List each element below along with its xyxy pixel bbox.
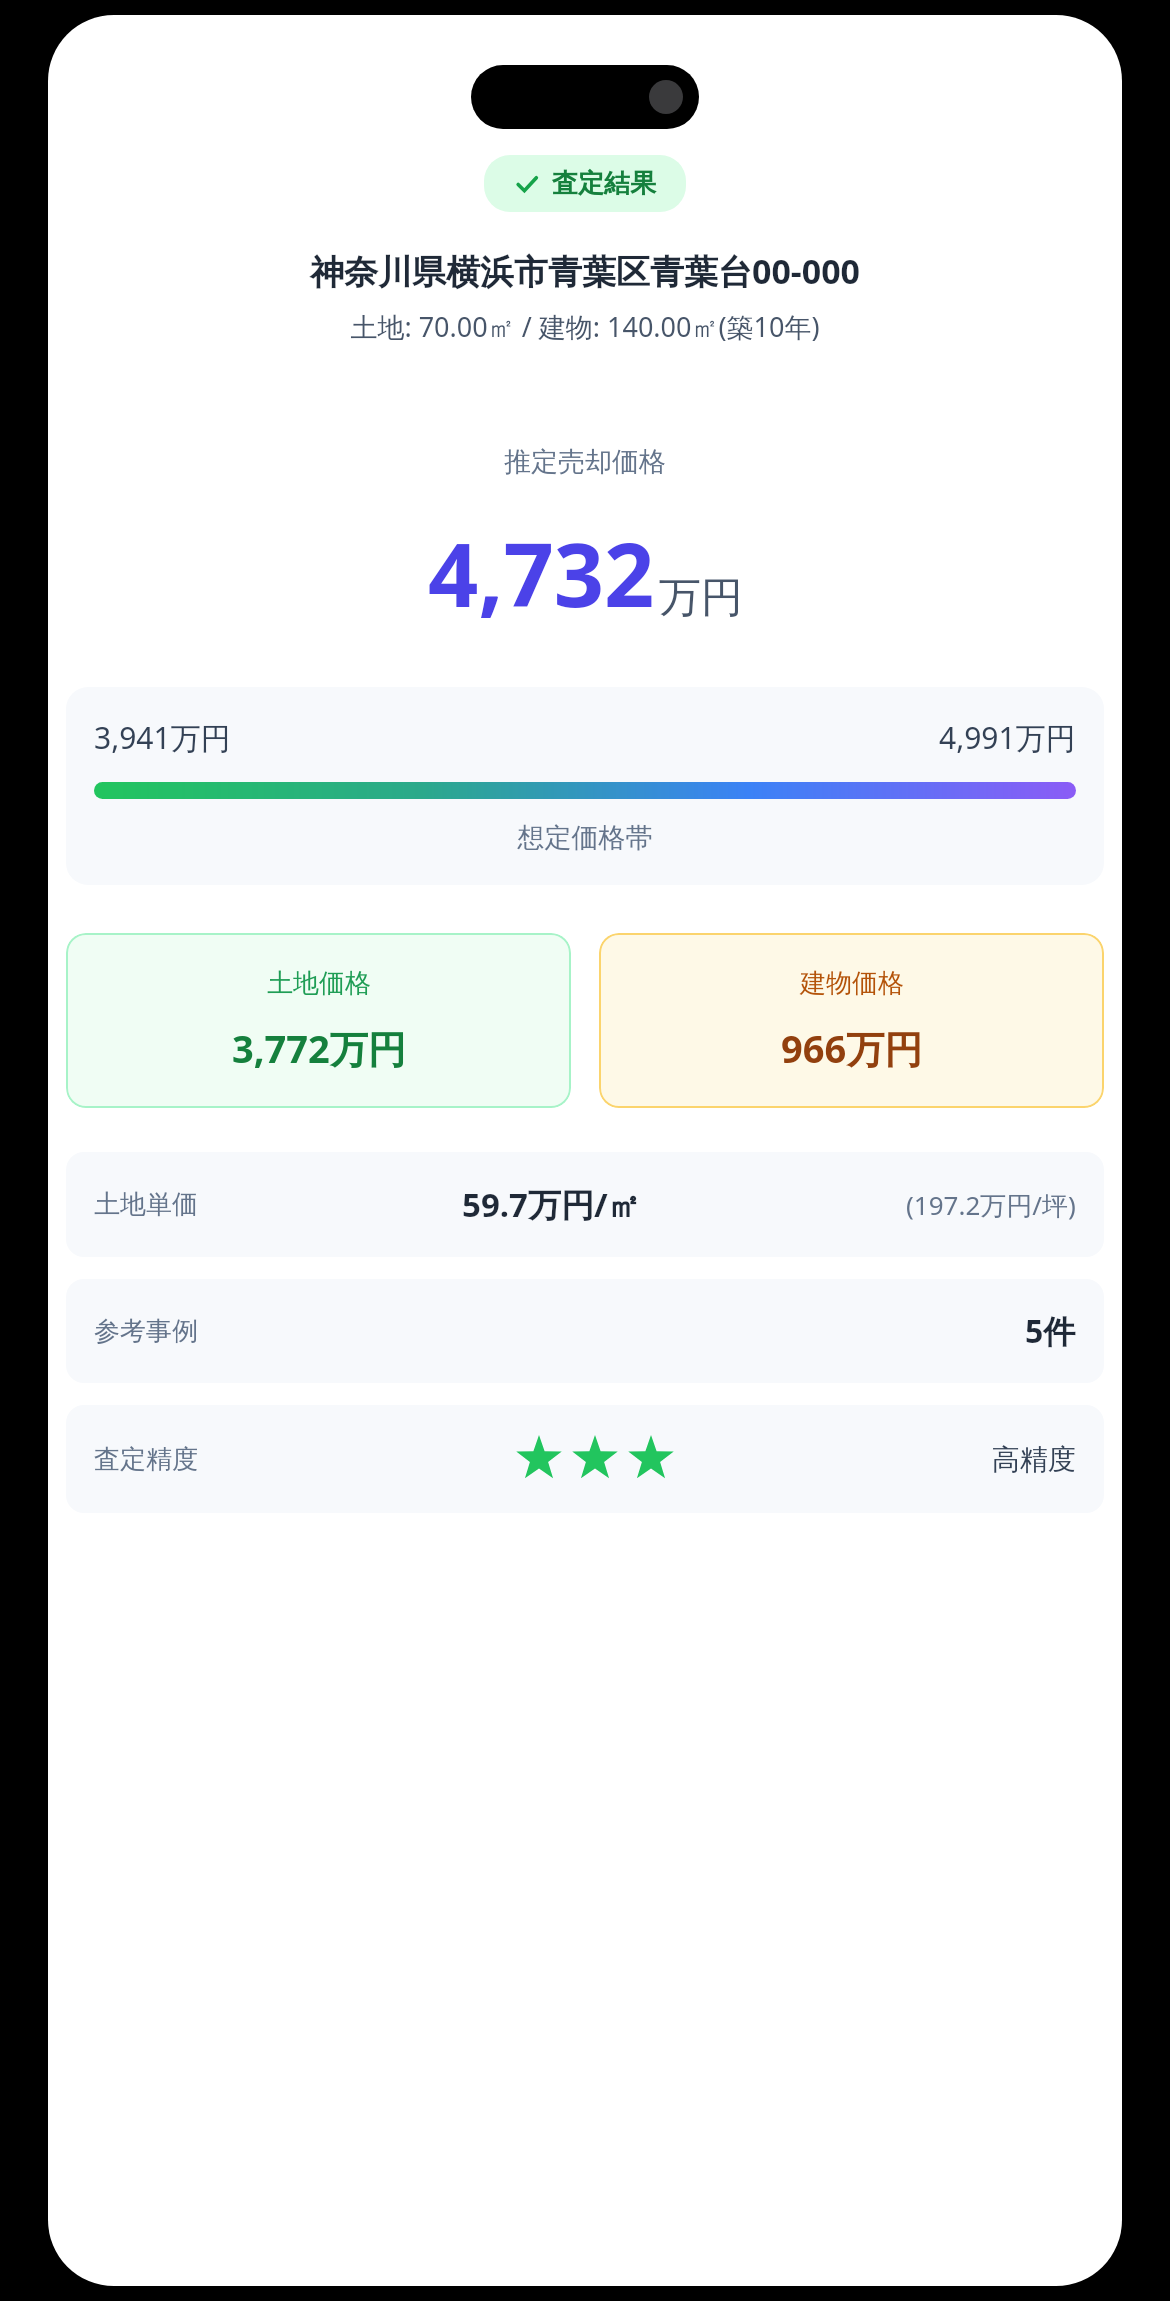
staticText: 査定精度 bbox=[94, 1443, 198, 1476]
staticText: 59.7万円/㎡ bbox=[462, 1182, 641, 1227]
staticText: 推定売却価格 bbox=[48, 445, 1122, 479]
staticText: 3,772万円 bbox=[232, 1022, 406, 1074]
staticText: 5件 bbox=[1025, 1309, 1076, 1353]
staticText: 土地: 70.00㎡ / 建物: 140.00㎡(築10年) bbox=[68, 308, 1102, 345]
staticText: 高精度 bbox=[992, 1442, 1076, 1477]
staticText: 966万円 bbox=[781, 1022, 923, 1074]
staticText: 土地価格 bbox=[267, 967, 371, 1000]
staticText: 神奈川県横浜市青葉区青葉台00-000 bbox=[68, 248, 1102, 294]
button[interactable]: 査定結果 bbox=[484, 155, 686, 212]
button[interactable]: 建物価格 bbox=[599, 933, 1104, 1108]
staticText: 査定結果 bbox=[552, 167, 656, 200]
staticText: 4,732 bbox=[428, 513, 655, 633]
other: Dynamic island bbox=[471, 65, 699, 129]
button[interactable]: 土地価格 bbox=[66, 933, 571, 1108]
staticText: 想定価格帯 bbox=[94, 821, 1076, 855]
staticText: 建物価格 bbox=[800, 967, 904, 1000]
button[interactable]: 査定精度 bbox=[66, 1405, 1104, 1513]
staticText: 万円 bbox=[659, 572, 743, 625]
button[interactable]: 参考事例 bbox=[66, 1279, 1104, 1383]
staticText: 参考事例 bbox=[94, 1315, 198, 1348]
button[interactable]: 土地単価 bbox=[66, 1152, 1104, 1257]
staticText: 3,941万円 bbox=[94, 717, 231, 758]
staticText: 4,991万円 bbox=[939, 717, 1076, 758]
staticText: (197.2万円/坪) bbox=[906, 1187, 1076, 1223]
staticText: 土地単価 bbox=[94, 1188, 198, 1221]
